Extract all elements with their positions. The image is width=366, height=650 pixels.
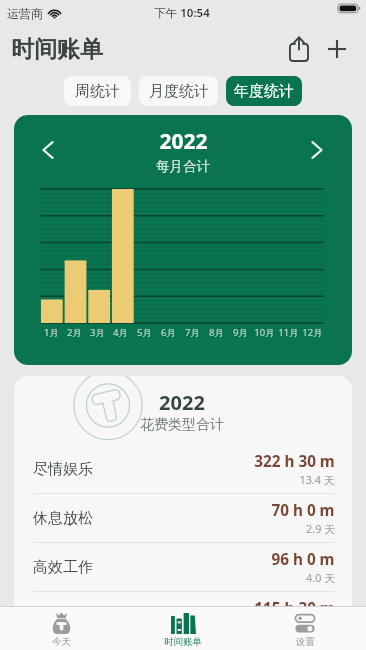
staticText: 周统计 <box>75 82 120 101</box>
staticText: 每月合计 <box>156 158 210 175</box>
staticText: 充实自己 <box>33 607 93 626</box>
staticText: 运营商 <box>7 6 43 21</box>
staticText: 2022 <box>159 127 208 156</box>
staticText: 2022 <box>159 389 205 416</box>
staticText: 高效工作 <box>33 558 93 577</box>
staticText: 花费类型合计 <box>140 416 224 434</box>
button[interactable]: 年度统计 <box>226 76 302 106</box>
staticText: 2月 <box>67 326 82 337</box>
button[interactable]: 尽情娱乐 <box>14 445 352 493</box>
staticText: 4月 <box>113 326 128 337</box>
button[interactable]: Add <box>320 29 354 69</box>
staticText: 70 h 0 m <box>271 500 335 521</box>
button[interactable]: 月度统计 <box>139 76 218 106</box>
staticText: 322 h 30 m <box>254 451 335 472</box>
staticText: 时间账单 <box>164 636 202 648</box>
staticText: 2.9 天 <box>306 521 335 536</box>
staticText: 月度统计 <box>149 82 209 101</box>
staticText: 11月 <box>278 326 299 337</box>
staticText: 1月 <box>44 326 59 337</box>
staticText: 96 h 0 m <box>271 549 335 570</box>
staticText: 今天 <box>52 636 71 648</box>
button[interactable]: Previous year <box>28 130 68 170</box>
staticText: 3月 <box>90 326 105 337</box>
staticText: 115 h 30 m <box>254 598 335 619</box>
staticText: 设置 <box>296 636 315 648</box>
staticText: 8月 <box>209 326 224 337</box>
button[interactable]: Next year <box>297 130 337 170</box>
staticText: 休息放松 <box>33 509 93 528</box>
button[interactable]: Share <box>281 29 317 69</box>
button[interactable]: 休息放松 <box>14 494 352 542</box>
staticText: 13.4 天 <box>299 472 335 487</box>
staticText: 尽情娱乐 <box>33 460 93 479</box>
staticText: 下午 10:54 <box>154 5 210 21</box>
button[interactable]: 时间账单 <box>122 607 244 650</box>
staticText: 9月 <box>233 326 248 337</box>
button[interactable]: 周统计 <box>64 76 131 106</box>
button[interactable]: 充实自己 <box>14 592 352 640</box>
staticText: 7月 <box>185 326 200 337</box>
staticText: 6月 <box>161 326 176 337</box>
staticText: 10月 <box>254 326 275 337</box>
staticText: 4.8 天 <box>306 619 335 634</box>
staticText: 12月 <box>302 326 323 337</box>
staticText: 4.0 天 <box>306 570 335 585</box>
button[interactable]: 设置 <box>244 607 366 650</box>
button[interactable]: 高效工作 <box>14 543 352 591</box>
staticText: 5月 <box>137 326 152 337</box>
button[interactable]: 今天 <box>0 607 122 650</box>
staticText: 时间账单 <box>11 35 103 64</box>
staticText: 年度统计 <box>234 82 294 101</box>
